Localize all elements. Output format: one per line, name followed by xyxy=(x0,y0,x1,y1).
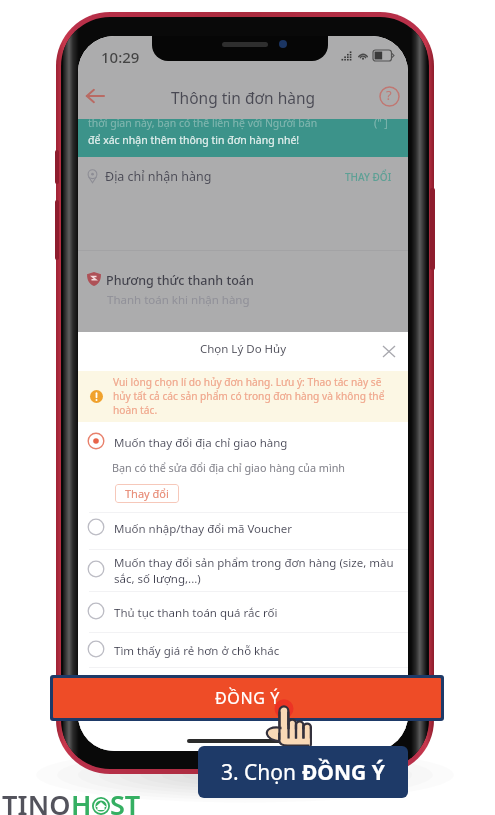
staticText: 3. Chọn xyxy=(221,758,302,787)
button[interactable]: Close xyxy=(378,340,400,362)
staticText: Tìm thấy giá rẻ hơn ở chỗ khác xyxy=(114,643,280,659)
staticText: ĐỒNG Ý xyxy=(215,687,280,709)
button[interactable]: Địa chỉ nhận hàng xyxy=(78,161,408,191)
staticText: ? xyxy=(386,86,392,104)
staticText: Bạn có thể sửa đổi địa chỉ giao hàng của… xyxy=(112,460,346,475)
staticText: THAY ĐỔI xyxy=(345,170,392,184)
staticText: Thủ tục thanh toán quá rắc rối xyxy=(114,605,278,621)
staticText: Muốn thay đổi địa chỉ giao hàng xyxy=(114,435,288,451)
button[interactable]: Back xyxy=(80,81,110,111)
staticText: TINO xyxy=(2,786,71,815)
button[interactable]: ĐỒNG Ý xyxy=(53,678,441,718)
staticText: ĐỒNG Ý xyxy=(302,758,385,787)
staticText: Phương thức thanh toán xyxy=(106,272,254,289)
staticText: Muốn nhập/thay đổi mã Voucher xyxy=(114,521,292,537)
button[interactable]: Muốn thay đổi địa chỉ giao hàng xyxy=(78,424,408,512)
button[interactable]: Muốn nhập/thay đổi mã Voucher xyxy=(78,508,408,548)
button[interactable]: Tìm thấy giá rẻ hơn ở chỗ khác xyxy=(78,630,408,670)
staticText: Thay đổi xyxy=(125,486,169,501)
button[interactable]: Thủ tục thanh toán quá rắc rối xyxy=(78,592,408,632)
staticText: thời gian này, bạn có thể liên hệ với Ng… xyxy=(88,119,318,130)
staticText: Thanh toán khi nhận hàng xyxy=(107,292,250,308)
staticText: Vui lòng chọn lí do hủy đơn hàng. Lưu ý:… xyxy=(113,375,385,417)
staticText: Chọn Lý Do Hủy xyxy=(78,341,408,357)
button[interactable]: Muốn thay đổi sản phẩm trong đơn hàng (s… xyxy=(78,550,408,590)
staticText: Địa chỉ nhận hàng xyxy=(105,168,212,185)
button[interactable]: Help xyxy=(374,81,404,111)
staticText: (" ] xyxy=(374,119,388,130)
staticText: Thông tin đơn hàng xyxy=(171,87,316,108)
button[interactable]: Thay đổi xyxy=(115,484,179,503)
staticText: 10:29 xyxy=(101,47,140,67)
staticText: để xác nhận thêm thông tin đơn hàng nhé! xyxy=(88,133,300,147)
staticText: Muốn thay đổi sản phẩm trong đơn hàng (s… xyxy=(114,555,394,586)
staticText: ST xyxy=(110,786,141,815)
staticText: H xyxy=(71,786,92,815)
